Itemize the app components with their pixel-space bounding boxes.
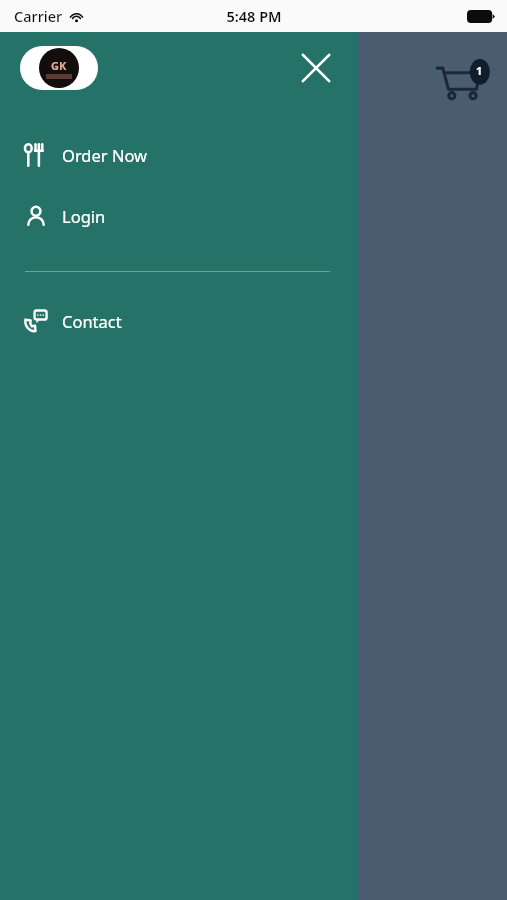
- staticText: 1: [476, 63, 483, 78]
- staticText: 5:48 PM: [226, 6, 282, 26]
- button[interactable]: Cart, 1 item: [435, 58, 491, 104]
- staticText: Choose: [41, 315, 96, 335]
- staticText: Order Now: [62, 144, 148, 166]
- button[interactable]: Close menu: [295, 47, 337, 89]
- staticText: Carrier: [14, 6, 63, 26]
- staticText: Contact: [62, 310, 122, 332]
- staticText: Login: [62, 205, 106, 227]
- staticText: GK: [51, 58, 67, 73]
- button[interactable]: Order Now: [0, 136, 357, 174]
- button[interactable]: Contact: [0, 302, 357, 340]
- button[interactable]: Choose: [22, 307, 114, 343]
- button[interactable]: Logo: [20, 46, 98, 90]
- button[interactable]: Login: [0, 197, 357, 235]
